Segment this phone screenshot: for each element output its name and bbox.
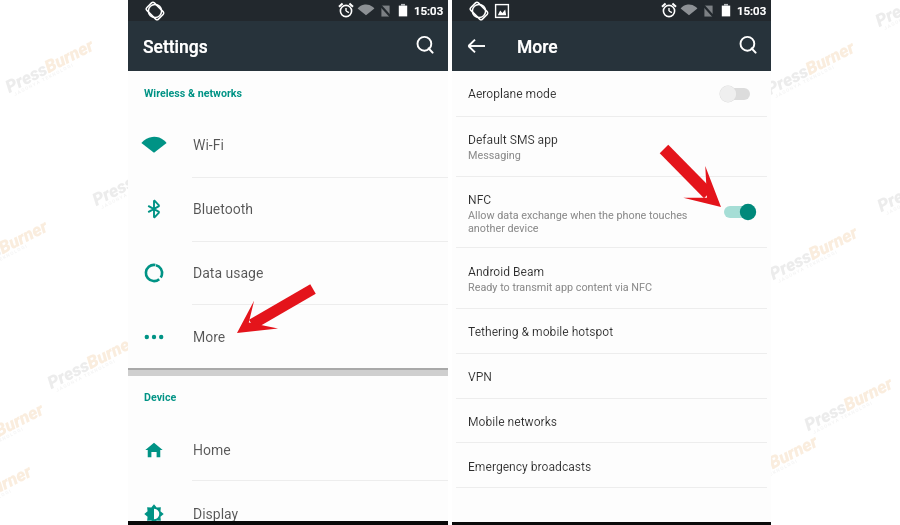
staticText: Press xyxy=(801,397,850,436)
staticText: Device xyxy=(144,391,177,404)
staticText: Android Beam xyxy=(468,265,545,279)
button[interactable]: Data usage xyxy=(128,241,448,305)
staticText: Burner xyxy=(765,431,822,474)
button[interactable]: Bluetooth xyxy=(128,177,448,241)
staticText: Aeroplane mode xyxy=(468,87,557,101)
staticText: Press xyxy=(0,240,5,279)
staticText: Tethering & mobile hotspot xyxy=(468,325,614,339)
staticText: 15:03 xyxy=(414,4,444,17)
staticText: J A G O N Y A T E K N O L O G I xyxy=(777,249,838,284)
button[interactable]: Search xyxy=(731,28,767,64)
button[interactable]: NFC on xyxy=(718,198,762,226)
staticText: Press xyxy=(872,0,900,32)
button[interactable]: Search xyxy=(408,28,444,64)
button[interactable]: Back xyxy=(460,29,494,63)
staticText: Data usage xyxy=(193,265,264,281)
button[interactable]: Aeroplane mode xyxy=(452,81,771,116)
staticText: Press xyxy=(44,355,93,394)
staticText: Burner xyxy=(802,37,859,80)
staticText: Press xyxy=(2,59,51,98)
staticText: Burner xyxy=(83,331,140,374)
staticText: More xyxy=(517,37,558,58)
staticText: J A G O N Y A T E K N O L O G I xyxy=(812,400,873,435)
staticText: J A G O N Y A T E K N O L O G I xyxy=(883,0,900,31)
staticText: Messaging xyxy=(468,149,521,162)
staticText: Burner xyxy=(840,373,897,416)
staticText: Burner xyxy=(41,35,98,78)
staticText: J A G O N Y A T E K N O L O G I xyxy=(0,488,12,523)
staticText: NFC xyxy=(468,193,492,207)
button[interactable]: Default SMS app xyxy=(452,127,771,176)
staticText: Settings xyxy=(143,37,208,58)
staticText: Press xyxy=(726,455,775,494)
staticText: Press xyxy=(874,178,900,217)
staticText: Allow data exchange when the phone touch… xyxy=(468,209,688,235)
staticText: J A G O N Y A T E K N O L O G I xyxy=(0,426,24,461)
button[interactable]: Aeroplane mode off xyxy=(718,80,762,108)
button[interactable]: Emergency broadcasts xyxy=(452,454,771,487)
staticText: Burner xyxy=(0,216,52,259)
staticText: Press xyxy=(766,246,815,285)
staticText: Mobile networks xyxy=(468,415,558,429)
staticText: Display xyxy=(193,506,239,522)
staticText: VPN xyxy=(468,370,492,384)
button[interactable]: Display xyxy=(128,482,448,525)
staticText: Ready to transmit app content via NFC xyxy=(468,281,653,294)
button[interactable]: Tethering & mobile hotspot xyxy=(452,319,771,354)
staticText: Emergency broadcasts xyxy=(468,460,592,474)
button[interactable]: Wi-Fi xyxy=(128,113,448,177)
staticText: Bluetooth xyxy=(193,201,253,217)
staticText: Wireless & networks xyxy=(144,87,243,100)
staticText: Default SMS app xyxy=(468,133,558,147)
button[interactable]: NFC xyxy=(452,187,771,247)
staticText: Burner xyxy=(128,148,185,191)
staticText: Wi-Fi xyxy=(193,137,224,153)
button[interactable]: Home xyxy=(128,418,448,482)
staticText: J A G O N Y A T E K N O L O G I xyxy=(885,181,900,216)
staticText: Burner xyxy=(805,222,862,265)
staticText: J A G O N Y A T E K N O L O G I xyxy=(774,64,835,99)
staticText: J A G O N Y A T E K N O L O G I xyxy=(13,62,74,97)
staticText: Press xyxy=(0,423,1,462)
button[interactable]: More xyxy=(128,305,448,369)
staticText: Burner xyxy=(0,399,48,442)
staticText: Home xyxy=(193,442,231,458)
button[interactable]: Android Beam xyxy=(452,259,771,308)
staticText: More xyxy=(193,329,226,345)
button[interactable]: Mobile networks xyxy=(452,409,771,442)
staticText: J A G O N Y A T E K N O L O G I xyxy=(55,358,116,393)
staticText: J A G O N Y A T E K N O L O G I xyxy=(100,175,161,210)
staticText: Press xyxy=(89,172,138,211)
button[interactable]: VPN xyxy=(452,364,771,398)
staticText: Burner xyxy=(0,461,36,504)
staticText: 15:03 xyxy=(737,4,767,17)
staticText: Press xyxy=(763,61,812,100)
staticText: J A G O N Y A T E K N O L O G I xyxy=(737,458,798,493)
staticText: J A G O N Y A T E K N O L O G I xyxy=(0,243,28,278)
